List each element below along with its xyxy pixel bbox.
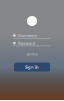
staticText: Username: [18, 33, 37, 38]
staticText: terms: [26, 51, 37, 56]
staticText: Sign In: [25, 64, 39, 70]
staticText: Password: [18, 40, 35, 46]
button[interactable]: Sign In: [14, 62, 50, 71]
